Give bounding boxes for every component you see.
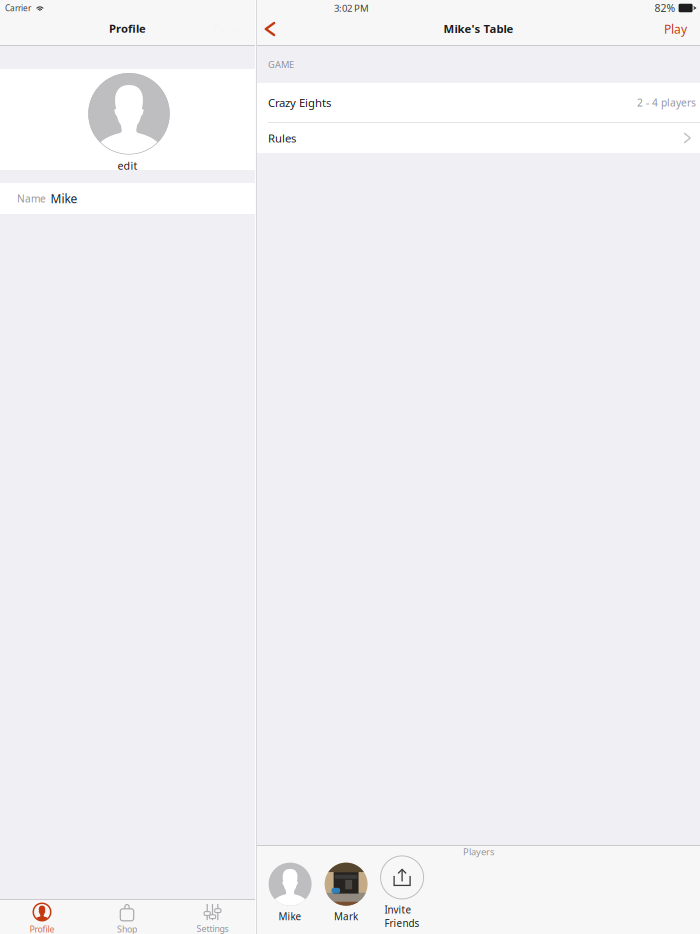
staticText: Settings [196,922,228,934]
staticText: Mike [50,190,77,207]
button[interactable]: Name [0,183,255,214]
button[interactable]: Mike [269,863,312,923]
staticText: Mike [279,910,302,923]
button[interactable]: Back [257,22,275,36]
button[interactable]: edit [0,69,255,170]
staticText: Invite Friends [385,903,420,930]
staticText: Shop [117,923,137,934]
staticText: Crazy Eights [268,95,331,110]
staticText: Mark [334,910,358,923]
staticText: Players [463,845,494,858]
button[interactable]: Invite Friends [381,856,424,930]
button[interactable]: Crazy Eights [257,83,700,122]
staticText: Carrier [5,2,31,14]
staticText: 82% [655,1,676,15]
staticText: GAME [268,58,294,71]
button[interactable]: Mark [325,863,368,923]
staticText: Name [17,192,46,205]
button[interactable]: Profile [0,900,84,934]
staticText: 2 - 4 players [637,95,696,109]
staticText: Mike's Table [443,21,513,36]
staticText: 3:02 PM [334,1,369,15]
staticText: Rules [268,130,296,146]
button[interactable]: Settings [169,900,255,934]
staticText: Play [664,21,687,37]
staticText: edit [117,158,137,173]
staticText: Profile [109,21,146,36]
button[interactable]: Shop [84,900,169,934]
button[interactable]: Play [664,21,700,37]
button[interactable]: Rules [257,123,700,153]
staticText: Profile [29,923,54,934]
